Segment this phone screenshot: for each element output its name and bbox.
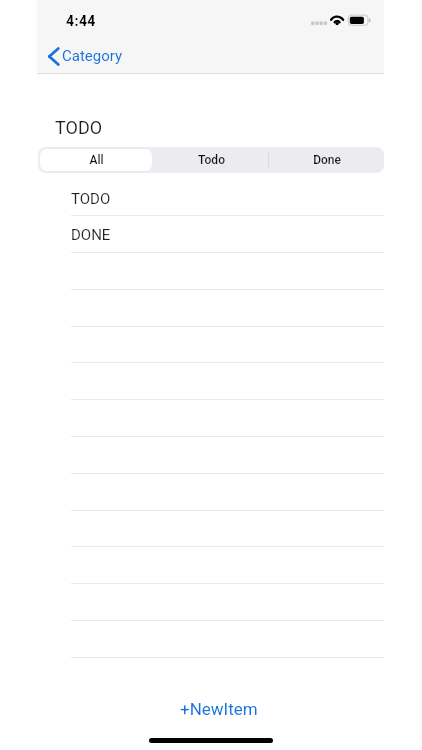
staticText: DONE [71,226,111,244]
button[interactable] [71,362,384,399]
button[interactable]: DONE [71,215,384,252]
button[interactable] [71,583,384,620]
button[interactable]: Todo [154,147,269,173]
staticText: TODO [55,117,103,135]
staticText: TODO [71,190,111,208]
button[interactable]: All [38,147,154,173]
button[interactable] [71,473,384,510]
button[interactable] [71,399,384,436]
button[interactable]: TODO [71,179,384,216]
button[interactable] [71,436,384,473]
button[interactable] [71,289,384,326]
staticText: +NewItem [180,699,258,719]
button[interactable] [71,546,384,583]
button[interactable] [71,326,384,363]
staticText: All [89,153,104,167]
button[interactable]: Done [269,147,384,173]
button[interactable]: +NewItem [16,691,422,727]
other: Back [45,47,60,66]
button[interactable] [71,252,384,289]
button[interactable]: Back [37,41,123,71]
staticText: Category [62,47,123,65]
staticText: 4:44 [66,13,96,29]
button[interactable] [71,510,384,547]
button[interactable] [71,620,384,657]
staticText: Todo [198,153,225,167]
staticText: Done [313,153,341,167]
other: Status [311,0,373,30]
